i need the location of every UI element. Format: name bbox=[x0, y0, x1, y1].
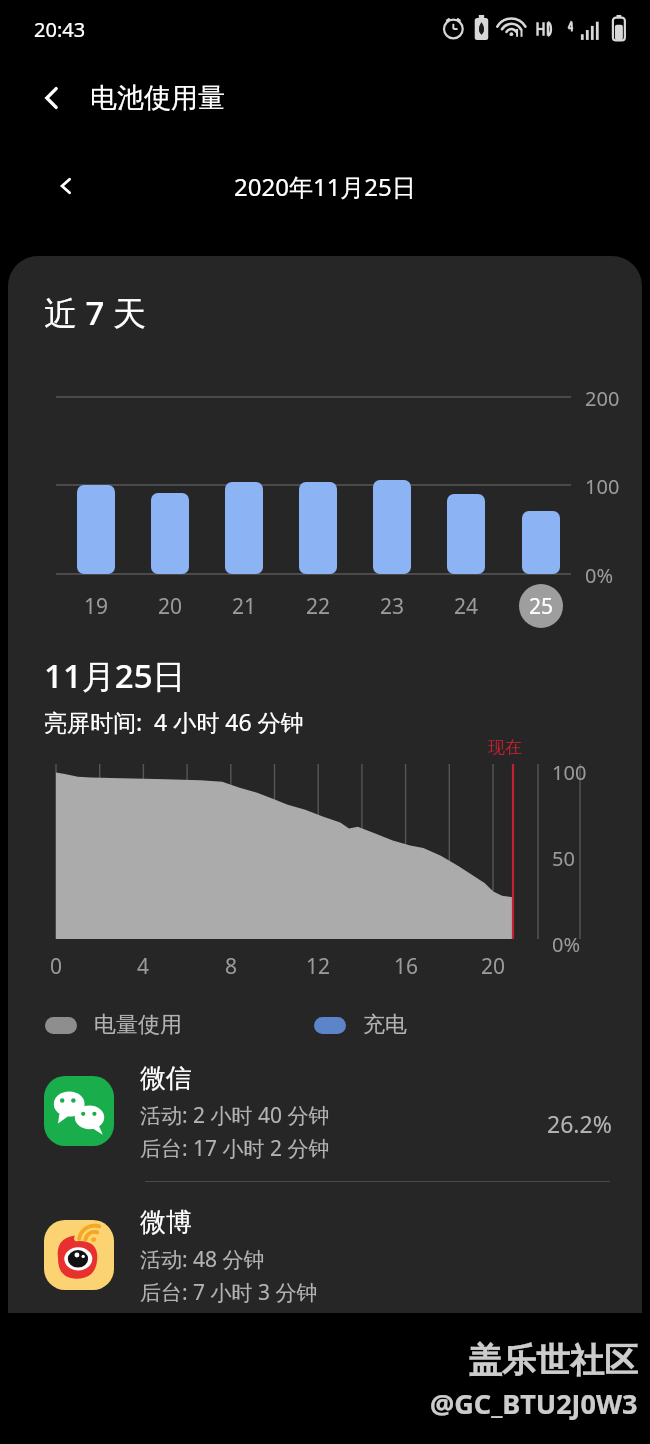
staticText: 23 bbox=[380, 592, 405, 621]
staticText: 盖乐世社区 bbox=[468, 1339, 638, 1382]
button[interactable]: 微博 bbox=[8, 1200, 642, 1313]
staticText: 后台: 17 小时 2 分钟 bbox=[140, 1134, 330, 1163]
staticText: 0% bbox=[552, 931, 581, 958]
staticText: 充电 bbox=[363, 1011, 407, 1039]
staticText: 200 bbox=[585, 385, 620, 412]
button[interactable]: 微信 bbox=[8, 1056, 642, 1169]
staticText: @GC_BTU2J0W3 bbox=[430, 1385, 638, 1422]
staticText: 0 bbox=[50, 952, 63, 981]
staticText: 近 7 天 bbox=[44, 290, 147, 335]
staticText: 4 bbox=[137, 952, 150, 981]
staticText: 0% bbox=[585, 562, 614, 589]
staticText: 亮屏时间: 4 小时 46 分钟 bbox=[44, 706, 304, 737]
staticText: 12 bbox=[306, 952, 331, 981]
staticText: 2020年11月25日 bbox=[234, 170, 416, 203]
staticText: 8 bbox=[225, 952, 238, 981]
staticText: 21 bbox=[232, 592, 257, 621]
staticText: 22 bbox=[306, 592, 331, 621]
staticText: 100 bbox=[585, 473, 620, 500]
staticText: 26.2% bbox=[547, 1108, 612, 1139]
staticText: 24 bbox=[454, 592, 479, 621]
staticText: 16 bbox=[394, 952, 419, 981]
staticText: 电量使用 bbox=[94, 1011, 182, 1039]
staticText: 微博 bbox=[140, 1206, 192, 1239]
staticText: 20 bbox=[481, 952, 506, 981]
staticText: 电池使用量 bbox=[90, 81, 225, 115]
staticText: 11月25日 bbox=[44, 653, 186, 698]
staticText: 20:43 bbox=[34, 16, 86, 43]
staticText: 活动: 48 分钟 bbox=[140, 1245, 265, 1274]
button[interactable]: 前一天 bbox=[44, 164, 88, 208]
staticText: 25 bbox=[529, 592, 554, 621]
staticText: 现在 bbox=[488, 737, 522, 758]
staticText: 19 bbox=[84, 592, 109, 621]
staticText: 100 bbox=[552, 759, 587, 786]
staticText: 20 bbox=[158, 592, 183, 621]
button[interactable]: 返回 bbox=[28, 74, 76, 122]
staticText: 50 bbox=[552, 845, 575, 872]
staticText: 活动: 2 小时 40 分钟 bbox=[140, 1101, 330, 1130]
staticText: 微信 bbox=[140, 1062, 192, 1095]
staticText: 后台: 7 小时 3 分钟 bbox=[140, 1278, 318, 1307]
